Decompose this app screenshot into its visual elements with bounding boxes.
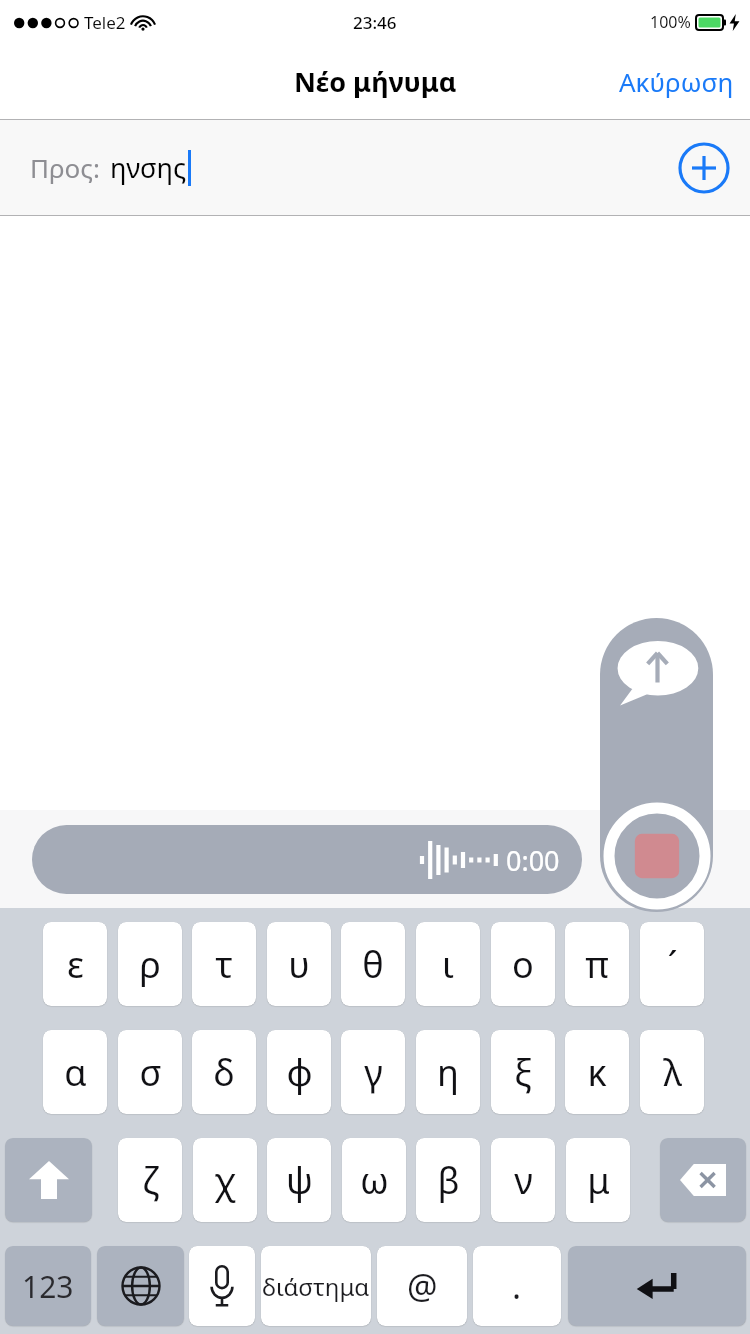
staticText: 23:46 [353,11,397,34]
staticText: . [512,1263,522,1309]
staticText: ι [442,940,454,989]
button[interactable]: θ [341,922,405,1006]
staticText: κ [587,1048,607,1097]
button[interactable]: υ [267,922,331,1006]
staticText: 123 [22,1266,74,1307]
button[interactable]: Ακύρωση [603,54,750,109]
staticText: Ακύρωση [619,64,734,99]
staticText: ηνσης [110,149,187,186]
staticText: υ [288,940,310,989]
staticText: ο [512,940,534,989]
button[interactable]: α [43,1030,107,1114]
staticText: 0:00 [506,842,560,879]
button[interactable]: χ [193,1138,257,1222]
button[interactable]: μ [566,1138,630,1222]
button[interactable]: κ [565,1030,629,1114]
button[interactable]: ρ [118,922,182,1006]
staticText: ζ [142,1156,159,1205]
staticText: ε [67,940,84,989]
staticText: Νέο μήνυμα [294,63,457,100]
button[interactable]: Shift [5,1138,92,1222]
staticText: 100% [650,11,691,33]
staticText: δ [213,1048,235,1097]
button[interactable]: Add contact [678,142,730,194]
staticText: σ [139,1048,162,1097]
button[interactable]: δ [192,1030,256,1114]
button[interactable]: ο [491,922,555,1006]
button[interactable]: ω [342,1138,406,1222]
button[interactable]: @ [377,1246,467,1326]
staticText: ω [360,1156,389,1205]
staticText: Προς: [30,150,100,185]
button[interactable]: Return [568,1246,746,1326]
button[interactable]: Send audio message [615,641,700,719]
button[interactable]: η [416,1030,480,1114]
button[interactable]: ζ [118,1138,182,1222]
button[interactable]: ν [491,1138,555,1222]
button[interactable]: τ [192,922,256,1006]
staticText: χ [214,1156,236,1205]
button[interactable]: Backspace [660,1138,746,1222]
button[interactable]: φ [267,1030,331,1114]
staticText: η [437,1048,459,1097]
staticText: ν [514,1156,533,1205]
button[interactable]: ι [416,922,480,1006]
staticText: φ [286,1048,313,1097]
button[interactable]: ψ [267,1138,331,1222]
button[interactable]: Audio message [32,825,582,894]
staticText: ξ [514,1048,532,1097]
button[interactable]: Dictate [189,1246,255,1326]
button[interactable]: π [565,922,629,1006]
button[interactable]: Numbers [5,1246,91,1326]
button[interactable]: Change language [97,1246,184,1326]
staticText: ´ [667,940,678,989]
staticText: θ [362,940,384,989]
staticText: τ [215,940,233,989]
button[interactable]: ´ [640,922,704,1006]
button[interactable]: β [416,1138,480,1222]
button[interactable]: γ [341,1030,405,1114]
button[interactable]: . [473,1246,561,1326]
staticText: α [64,1048,87,1097]
staticText: ρ [139,940,161,989]
button[interactable]: ξ [491,1030,555,1114]
button[interactable]: διάστημα [261,1246,371,1326]
staticText: μ [587,1156,610,1205]
button[interactable]: σ [118,1030,182,1114]
staticText: ψ [286,1156,313,1205]
staticText: π [585,940,609,989]
button[interactable]: λ [640,1030,704,1114]
staticText: γ [364,1048,383,1097]
button[interactable]: Stop recording [603,802,711,910]
staticText: β [437,1156,460,1205]
staticText: λ [663,1048,682,1097]
staticText: @ [407,1263,438,1309]
staticText: Tele2 [84,11,126,34]
staticText: διάστημα [262,1270,370,1303]
button[interactable]: ε [43,922,107,1006]
